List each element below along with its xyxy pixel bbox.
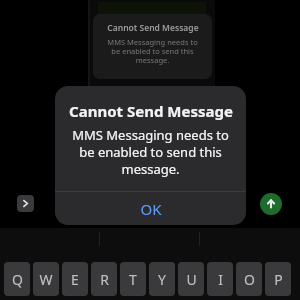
staticText: R (100, 270, 109, 289)
staticText: I (218, 270, 223, 289)
button[interactable]: U (178, 262, 204, 296)
staticText: Q (12, 270, 23, 289)
staticText: T (129, 270, 137, 289)
button[interactable]: T (120, 262, 146, 296)
button[interactable]: Y (149, 262, 175, 296)
staticText: MMS Messaging needs to be enabled to sen… (72, 126, 229, 178)
button[interactable]: P (265, 262, 291, 296)
staticText: U (186, 270, 197, 289)
staticText: Cannot Send Message (107, 22, 199, 34)
staticText: O (244, 270, 255, 289)
staticText: P (274, 270, 283, 289)
button[interactable]: E (62, 262, 88, 296)
staticText: W (39, 270, 53, 289)
button[interactable]: I (207, 262, 233, 296)
staticText: Y (158, 270, 166, 289)
button[interactable]: Q (4, 262, 30, 296)
button[interactable]: Expand apps (17, 195, 34, 212)
button[interactable]: W (33, 262, 59, 296)
staticText: Cannot Send Message (69, 101, 233, 121)
button[interactable]: OK (55, 192, 246, 225)
button[interactable]: O (236, 262, 262, 296)
staticText: MMS Messaging needs to be enabled to sen… (107, 37, 198, 66)
button[interactable]: Send (260, 193, 282, 215)
staticText: E (71, 270, 79, 289)
staticText: OK (140, 199, 162, 219)
button[interactable]: R (91, 262, 117, 296)
